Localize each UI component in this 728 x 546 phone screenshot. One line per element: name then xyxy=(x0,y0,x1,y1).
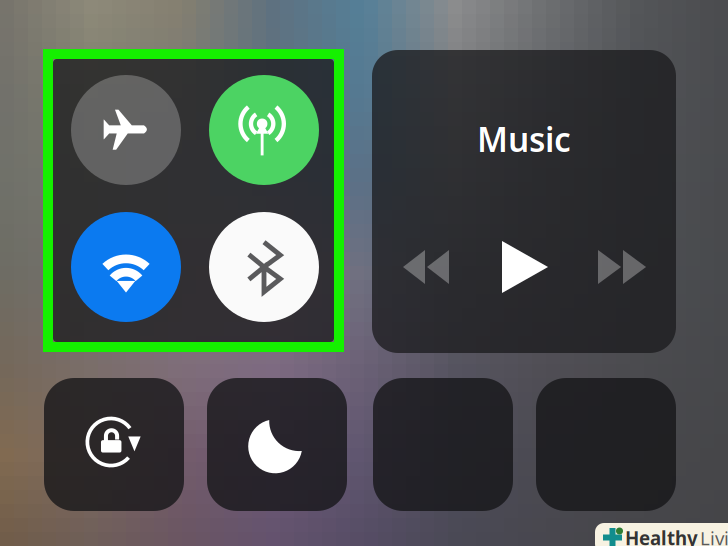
staticText: Music xyxy=(477,117,571,161)
button[interactable]: Timer xyxy=(536,378,676,511)
staticText: Living xyxy=(700,526,728,546)
button[interactable]: Bluetooth xyxy=(209,212,319,322)
button[interactable]: Cellular Data xyxy=(209,75,319,185)
button[interactable]: Do Not Disturb xyxy=(207,378,347,511)
staticText: Healthy xyxy=(625,526,698,546)
button[interactable]: Play xyxy=(486,229,562,305)
button[interactable]: Flashlight xyxy=(373,378,513,511)
button[interactable]: Rotation Lock xyxy=(44,378,184,511)
button[interactable]: Previous Track xyxy=(388,229,464,305)
button[interactable]: Next Track xyxy=(584,229,660,305)
button[interactable]: Wi-Fi xyxy=(71,212,181,322)
button[interactable]: Airplane Mode xyxy=(71,75,181,185)
